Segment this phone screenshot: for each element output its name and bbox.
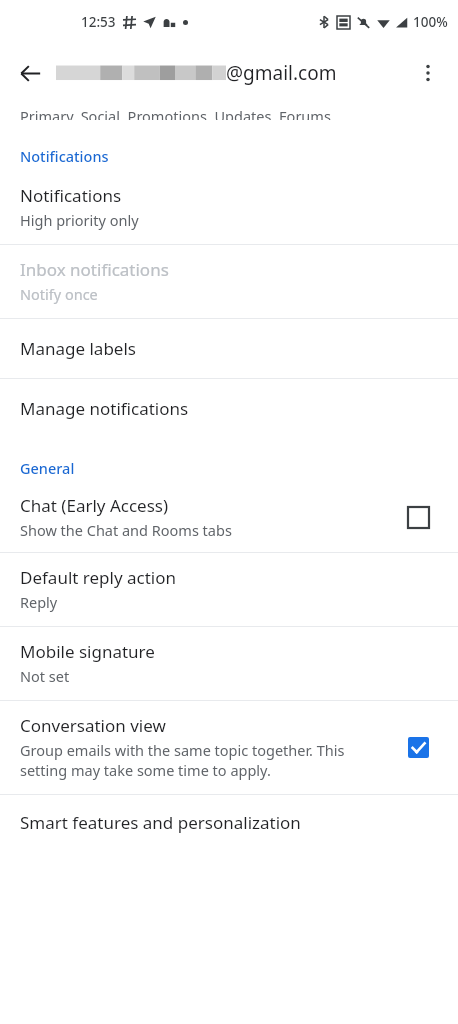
staticText: General (20, 458, 75, 478)
staticText: Chat (Early Access) (20, 494, 169, 517)
staticText: Notifications (20, 184, 122, 207)
staticText: Not set (20, 666, 70, 686)
staticText: Group emails with the same topic togethe… (20, 740, 386, 780)
staticText: Default reply action (20, 566, 177, 589)
staticText: Show the Chat and Rooms tabs (20, 520, 232, 540)
staticText: Smart features and personalization (20, 811, 301, 834)
button[interactable]: Primary, Social, Promotions, Updates, Fo… (0, 102, 458, 120)
staticText: 12:53 (81, 13, 116, 31)
staticText: 100% (413, 13, 448, 31)
staticText: Notifications (20, 146, 109, 166)
button[interactable]: More options (406, 51, 450, 95)
button[interactable]: Navigate up (8, 51, 52, 95)
button[interactable]: Default reply action (0, 553, 458, 626)
staticText: Mobile signature (20, 640, 155, 663)
button[interactable]: Notifications (0, 173, 458, 244)
staticText: Notify once (20, 284, 98, 304)
button[interactable]: Mobile signature (0, 627, 458, 700)
button[interactable]: Chat (Early Access) checkbox, unchecked (398, 497, 438, 537)
button[interactable]: Chat (Early Access) (0, 484, 458, 552)
button[interactable]: Conversation view checkbox, checked (398, 727, 438, 767)
button[interactable]: Manage notifications (0, 379, 458, 438)
staticText: Reply (20, 592, 58, 612)
button[interactable]: Conversation view (0, 701, 458, 794)
staticText: @gmail.com (226, 60, 337, 86)
staticText: Inbox notifications (20, 258, 169, 281)
staticText: Conversation view (20, 714, 166, 737)
button[interactable]: Smart features and personalization (0, 795, 458, 850)
staticText: Manage labels (20, 337, 136, 360)
button[interactable]: Manage labels (0, 319, 458, 378)
button[interactable]: Inbox notifications (0, 245, 458, 318)
staticText: Manage notifications (20, 397, 189, 420)
staticText: Primary, Social, Promotions, Updates, Fo… (20, 106, 331, 120)
staticText: High priority only (20, 210, 139, 230)
